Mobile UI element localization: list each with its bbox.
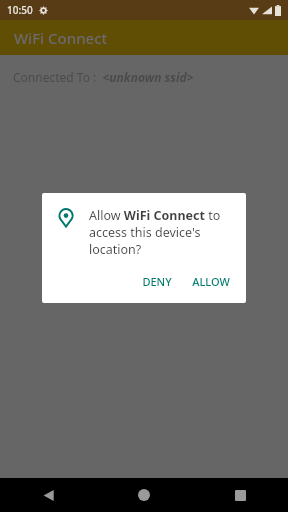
staticText: Connected To : <unknown ssid> — [13, 69, 194, 85]
staticText: Allow WiFi Connect to access this device… — [89, 207, 232, 258]
staticText: ALLOW — [192, 274, 230, 289]
staticText: WiFi Connect — [14, 28, 108, 48]
button[interactable]: Recent apps — [192, 478, 288, 512]
button[interactable]: DENY — [134, 268, 180, 295]
button[interactable]: Back — [0, 478, 96, 512]
button[interactable]: Home — [96, 478, 192, 512]
staticText: 10:50 — [7, 3, 33, 17]
staticText: DENY — [142, 274, 172, 289]
button[interactable]: ALLOW — [184, 268, 238, 295]
